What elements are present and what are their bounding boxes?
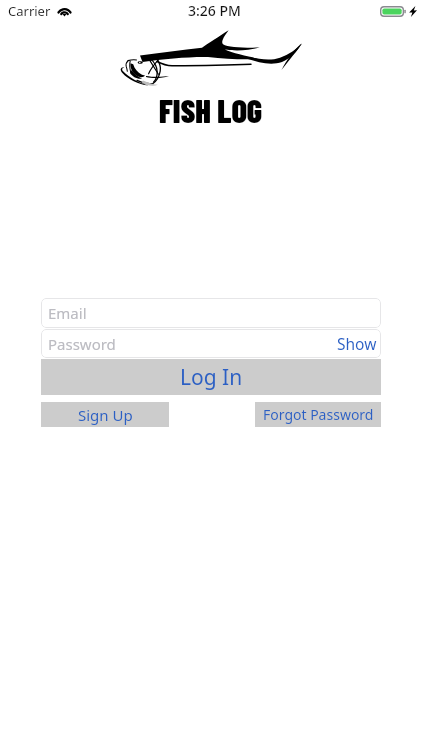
staticText: Show <box>337 333 377 354</box>
staticText: Log In <box>180 363 243 392</box>
button[interactable]: Log In <box>41 359 381 395</box>
button[interactable]: Forgot Password <box>255 402 381 427</box>
button[interactable]: Email <box>41 298 381 328</box>
staticText: Sign Up <box>78 405 133 425</box>
button[interactable]: Show <box>337 333 377 354</box>
staticText: Carrier <box>8 2 51 20</box>
staticText: FISH LOG <box>159 91 263 129</box>
staticText: Forgot Password <box>263 405 374 424</box>
staticText: Email <box>48 303 87 323</box>
staticText: Password <box>48 334 116 354</box>
staticText: 3:26 PM <box>188 1 241 20</box>
button[interactable]: Password <box>41 329 381 358</box>
button[interactable]: Sign Up <box>41 402 169 427</box>
